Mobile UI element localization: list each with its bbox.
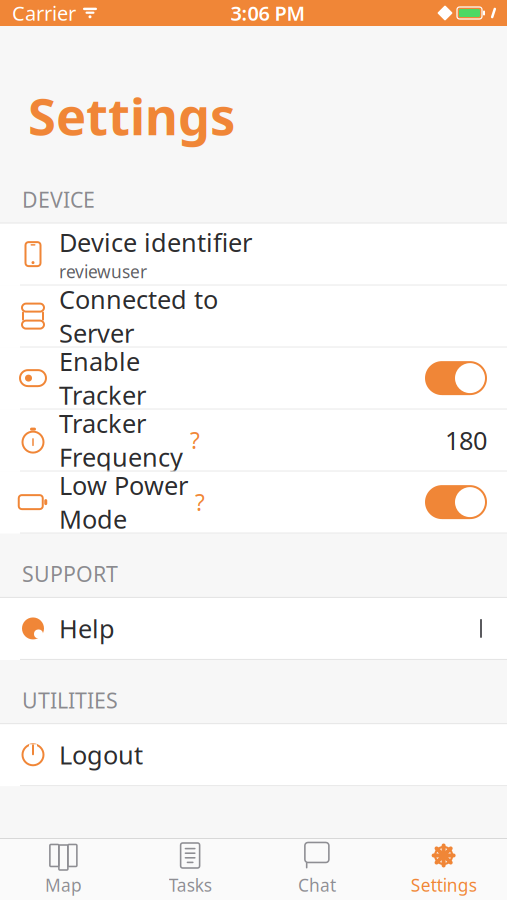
- staticText: Settings: [411, 873, 477, 896]
- button[interactable]: Device identifier: [0, 224, 507, 286]
- staticText: ?: [195, 487, 205, 517]
- staticText: Carrier: [12, 0, 76, 26]
- staticText: Logout: [59, 738, 143, 772]
- staticText: Tasks: [169, 873, 212, 896]
- button[interactable]: Tracker Frequency: [0, 410, 507, 472]
- staticText: 3:06 PM: [230, 0, 305, 26]
- staticText: Settings: [28, 82, 235, 149]
- staticText: Map: [45, 873, 82, 896]
- button[interactable]: Help: [0, 598, 507, 660]
- staticText: Device identifier: [59, 225, 252, 259]
- staticText: Chat: [298, 873, 336, 896]
- button[interactable]: Connected to Server: [0, 286, 507, 348]
- staticText: SUPPORT: [22, 560, 118, 588]
- button[interactable]: Low Power Mode: [0, 472, 507, 534]
- staticText: Help: [59, 612, 115, 645]
- staticText: Low Power Mode: [59, 468, 188, 536]
- staticText: ?: [190, 425, 200, 455]
- staticText: DEVICE: [22, 185, 95, 214]
- staticText: Connected to Server: [59, 282, 218, 350]
- button[interactable]: Settings: [380, 834, 507, 900]
- staticText: 180: [445, 423, 487, 457]
- staticText: Enable Tracker: [59, 344, 146, 412]
- button[interactable]: Enable Tracker: [0, 348, 507, 410]
- staticText: reviewuser: [59, 260, 147, 283]
- button[interactable]: Map: [0, 834, 127, 900]
- button[interactable]: Chat: [253, 834, 380, 900]
- button[interactable]: Logout: [0, 724, 507, 786]
- staticText: UTILITIES: [22, 686, 118, 714]
- staticText: Tracker Frequency: [59, 406, 183, 474]
- button[interactable]: Tasks: [127, 834, 254, 900]
